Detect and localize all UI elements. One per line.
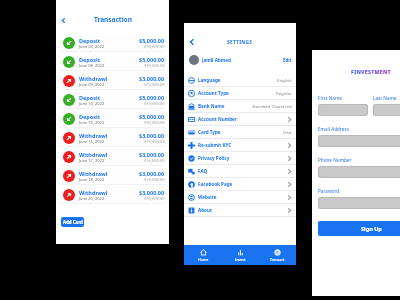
staticText: $16,000.00: [144, 158, 165, 163]
staticText: $3,000.00: [139, 132, 165, 139]
staticText: Regular: [276, 90, 292, 96]
button[interactable]: Privacy Policy: [184, 152, 296, 164]
staticText: $3,000.00: [139, 75, 165, 82]
staticText: June 08, 2022: [79, 63, 105, 68]
staticText: Facebook Page: [198, 181, 233, 187]
button[interactable]: Account Type: [184, 87, 296, 99]
staticText: First Name: [318, 95, 342, 101]
staticText: Last Name: [373, 95, 397, 101]
staticText: Account Type: [198, 90, 229, 96]
staticText: Email Address: [318, 126, 349, 132]
staticText: June 15, 2022: [79, 120, 105, 125]
staticText: $19,000.00: [144, 139, 165, 144]
staticText: $10,000.00: [144, 82, 165, 87]
button[interactable]: FAQ: [184, 165, 296, 177]
staticText: Sign Up: [361, 225, 382, 232]
staticText: FINVESTMENT: [351, 68, 391, 75]
button[interactable]: Deposit: [60, 92, 166, 108]
button[interactable]: Re-submit KYC: [184, 139, 296, 151]
button[interactable]: Withdrawl: [60, 168, 166, 184]
button[interactable]: Account Number: [184, 113, 296, 125]
staticText: Add Card: [63, 219, 83, 225]
staticText: Edit: [283, 57, 292, 63]
staticText: $10,000.00: [144, 101, 165, 106]
staticText: Re-submit KYC: [198, 142, 232, 148]
staticText: Withdrawl: [79, 75, 108, 82]
staticText: SETTINGS: [227, 39, 253, 46]
staticText: $10,000.00: [144, 63, 165, 68]
staticText: $3,000.00: [139, 170, 165, 177]
staticText: Visa: [283, 129, 292, 135]
staticText: $10,000.00: [144, 196, 165, 201]
staticText: June 15, 2022: [79, 139, 105, 144]
staticText: Bank Name: [198, 103, 225, 109]
button[interactable]: Jamil Ahmed: [184, 51, 296, 68]
staticText: English: [277, 77, 292, 83]
staticText: June 10, 2022: [79, 101, 105, 106]
staticText: Deposit: [79, 94, 101, 101]
button[interactable]: Language: [184, 74, 296, 86]
staticText: $5,000.00: [139, 113, 165, 120]
button[interactable]: Back: [188, 38, 196, 46]
button[interactable]: Deposit: [60, 111, 166, 127]
staticText: Deposit: [79, 113, 101, 120]
button[interactable]: Withdrawl: [60, 73, 166, 89]
button[interactable]: Home: [184, 245, 222, 265]
staticText: Transact: [270, 257, 285, 262]
staticText: June 20, 2022: [79, 196, 105, 201]
button[interactable]: About: [184, 204, 296, 216]
staticText: $13,000.00: [144, 177, 165, 182]
staticText: Withdrawl: [79, 189, 108, 196]
staticText: Phone Number: [318, 157, 352, 163]
staticText: Standard Chartered: [252, 103, 292, 109]
staticText: June 03, 2022: [79, 44, 105, 49]
button[interactable]: Withdrawl: [60, 187, 166, 203]
button[interactable]: Add Card: [61, 217, 84, 227]
button[interactable]: Deposit: [60, 54, 166, 70]
button[interactable]: Bank Name: [184, 100, 296, 112]
staticText: $3,000.00: [139, 189, 165, 196]
button[interactable]: Facebook Page: [184, 178, 296, 190]
button[interactable]: Sign Up: [318, 221, 400, 236]
staticText: Privacy Policy: [198, 155, 230, 161]
staticText: Account Number: [198, 116, 237, 122]
button[interactable]: Invest: [222, 245, 259, 265]
button[interactable]: Withdrawl: [60, 149, 166, 165]
button[interactable]: Card Type: [184, 126, 296, 138]
button[interactable]: Back: [59, 16, 67, 24]
staticText: Transaction: [94, 15, 132, 24]
staticText: Withdrawl: [79, 170, 108, 177]
button[interactable]: Website: [184, 191, 296, 203]
staticText: Deposit: [79, 37, 101, 44]
button[interactable]: Withdrawl: [60, 130, 166, 146]
staticText: Withdrawl: [79, 132, 108, 139]
staticText: Invest: [235, 257, 246, 262]
staticText: $5,000.00: [139, 94, 165, 101]
staticText: $5,000.00: [139, 56, 165, 63]
staticText: $10,000.00: [144, 44, 165, 49]
staticText: Website: [198, 194, 217, 200]
staticText: Password: [318, 188, 340, 194]
staticText: FAQ: [198, 168, 208, 174]
staticText: $3,000.00: [139, 151, 165, 158]
staticText: $5,000.00: [139, 37, 165, 44]
staticText: June 09, 2022: [79, 82, 105, 87]
staticText: Card Type: [198, 129, 221, 135]
staticText: Withdrawl: [79, 151, 108, 158]
staticText: Jamil Ahmed: [202, 57, 231, 63]
button[interactable]: Deposit: [60, 35, 166, 51]
button[interactable]: Transact: [259, 245, 296, 265]
staticText: June 17, 2022: [79, 158, 105, 163]
staticText: Language: [198, 77, 221, 83]
staticText: Deposit: [79, 56, 101, 63]
staticText: June 18, 2022: [79, 177, 105, 182]
staticText: Home: [198, 257, 209, 262]
staticText: About: [198, 207, 212, 213]
staticText: $20,000.00: [144, 120, 165, 125]
